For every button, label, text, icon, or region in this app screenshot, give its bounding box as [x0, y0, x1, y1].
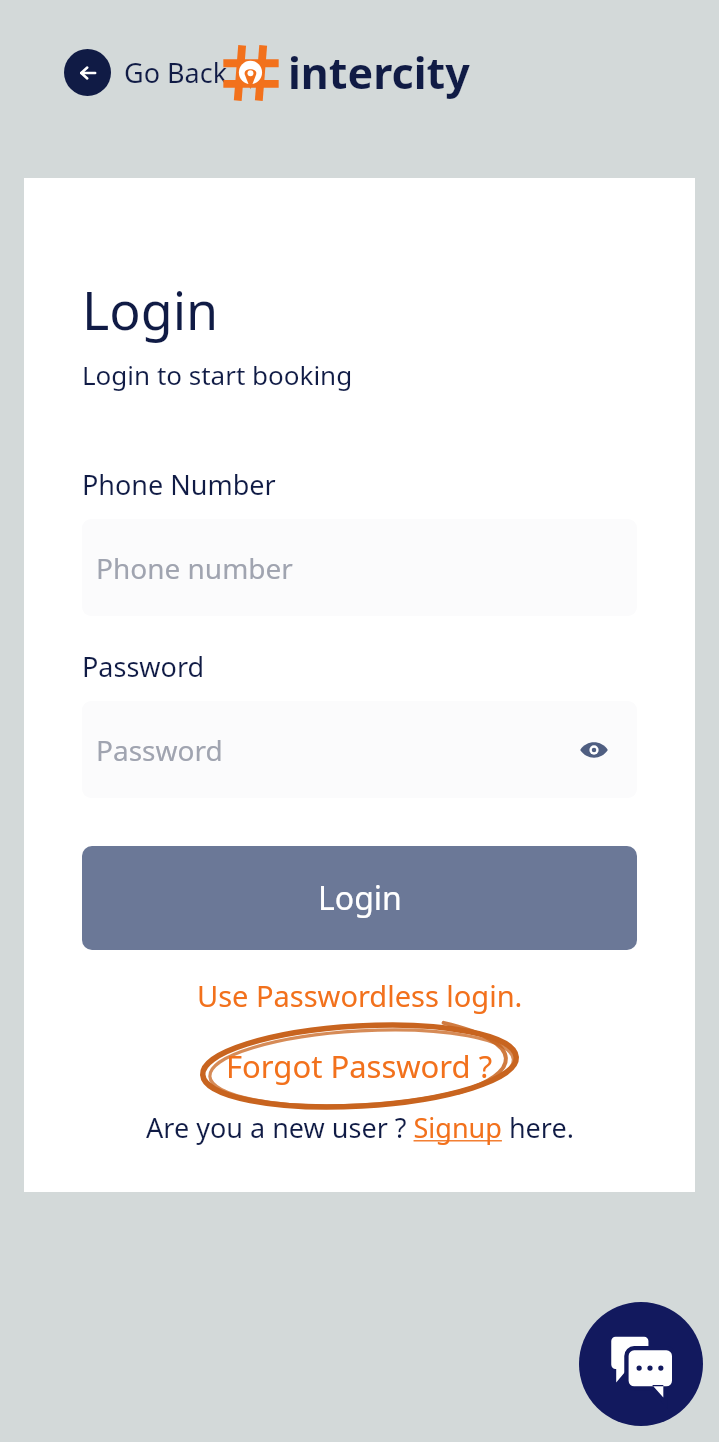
staticText: intercity: [288, 43, 470, 102]
staticText: Login: [82, 274, 219, 345]
other: Back: [64, 49, 111, 96]
button[interactable]: Forgot Password ?: [226, 1045, 493, 1087]
staticText: Password: [96, 731, 223, 769]
button[interactable]: Use Passwordless login.: [197, 976, 523, 1015]
button[interactable]: Chat: [579, 1302, 703, 1426]
button[interactable]: Login: [82, 846, 637, 950]
button[interactable]: Phone number: [82, 519, 637, 616]
button[interactable]: Password: [82, 701, 637, 798]
button[interactable]: Are you a new user ? Signup here.: [146, 1109, 574, 1146]
button[interactable]: Back: [64, 49, 228, 96]
staticText: Phone Number: [82, 466, 276, 503]
staticText: Phone number: [96, 549, 293, 587]
staticText: Login to start booking: [82, 357, 353, 392]
staticText: Password: [82, 648, 205, 685]
staticText: Login: [318, 876, 402, 920]
button[interactable]: Show password: [573, 729, 615, 771]
staticText: Go Back: [124, 54, 228, 91]
